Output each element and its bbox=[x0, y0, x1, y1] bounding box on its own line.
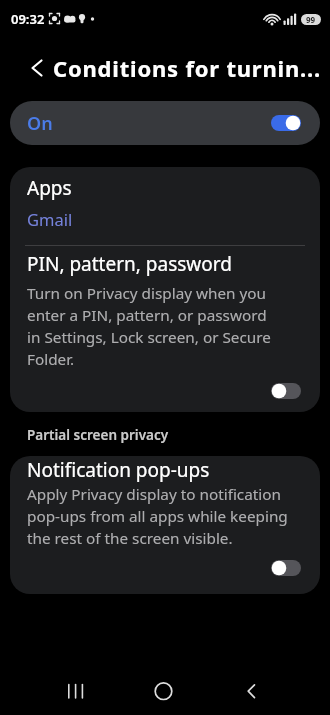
staticText: Gmail bbox=[27, 208, 73, 230]
staticText: 99 bbox=[306, 14, 316, 25]
staticText: 09:32 bbox=[11, 10, 45, 28]
staticText: Apply Privacy display to notification po… bbox=[27, 484, 288, 549]
button[interactable] bbox=[271, 115, 301, 131]
button[interactable]: PIN, pattern, password bbox=[10, 246, 320, 412]
button[interactable]: On bbox=[10, 101, 320, 145]
staticText: Conditions for turnin... bbox=[53, 53, 322, 83]
staticText: Partial screen privacy bbox=[27, 426, 169, 444]
button[interactable]: Notification pop-ups bbox=[10, 456, 320, 594]
staticText: On bbox=[27, 111, 53, 136]
staticText: PIN, pattern, password bbox=[27, 251, 232, 277]
button[interactable] bbox=[271, 383, 301, 399]
button[interactable] bbox=[271, 560, 301, 576]
button[interactable] bbox=[21, 38, 53, 98]
staticText: Turn on Privacy display when you enter a… bbox=[27, 283, 271, 370]
staticText: Notification pop-ups bbox=[27, 457, 210, 483]
button[interactable]: Apps bbox=[10, 167, 320, 245]
staticText: Apps bbox=[27, 175, 72, 201]
